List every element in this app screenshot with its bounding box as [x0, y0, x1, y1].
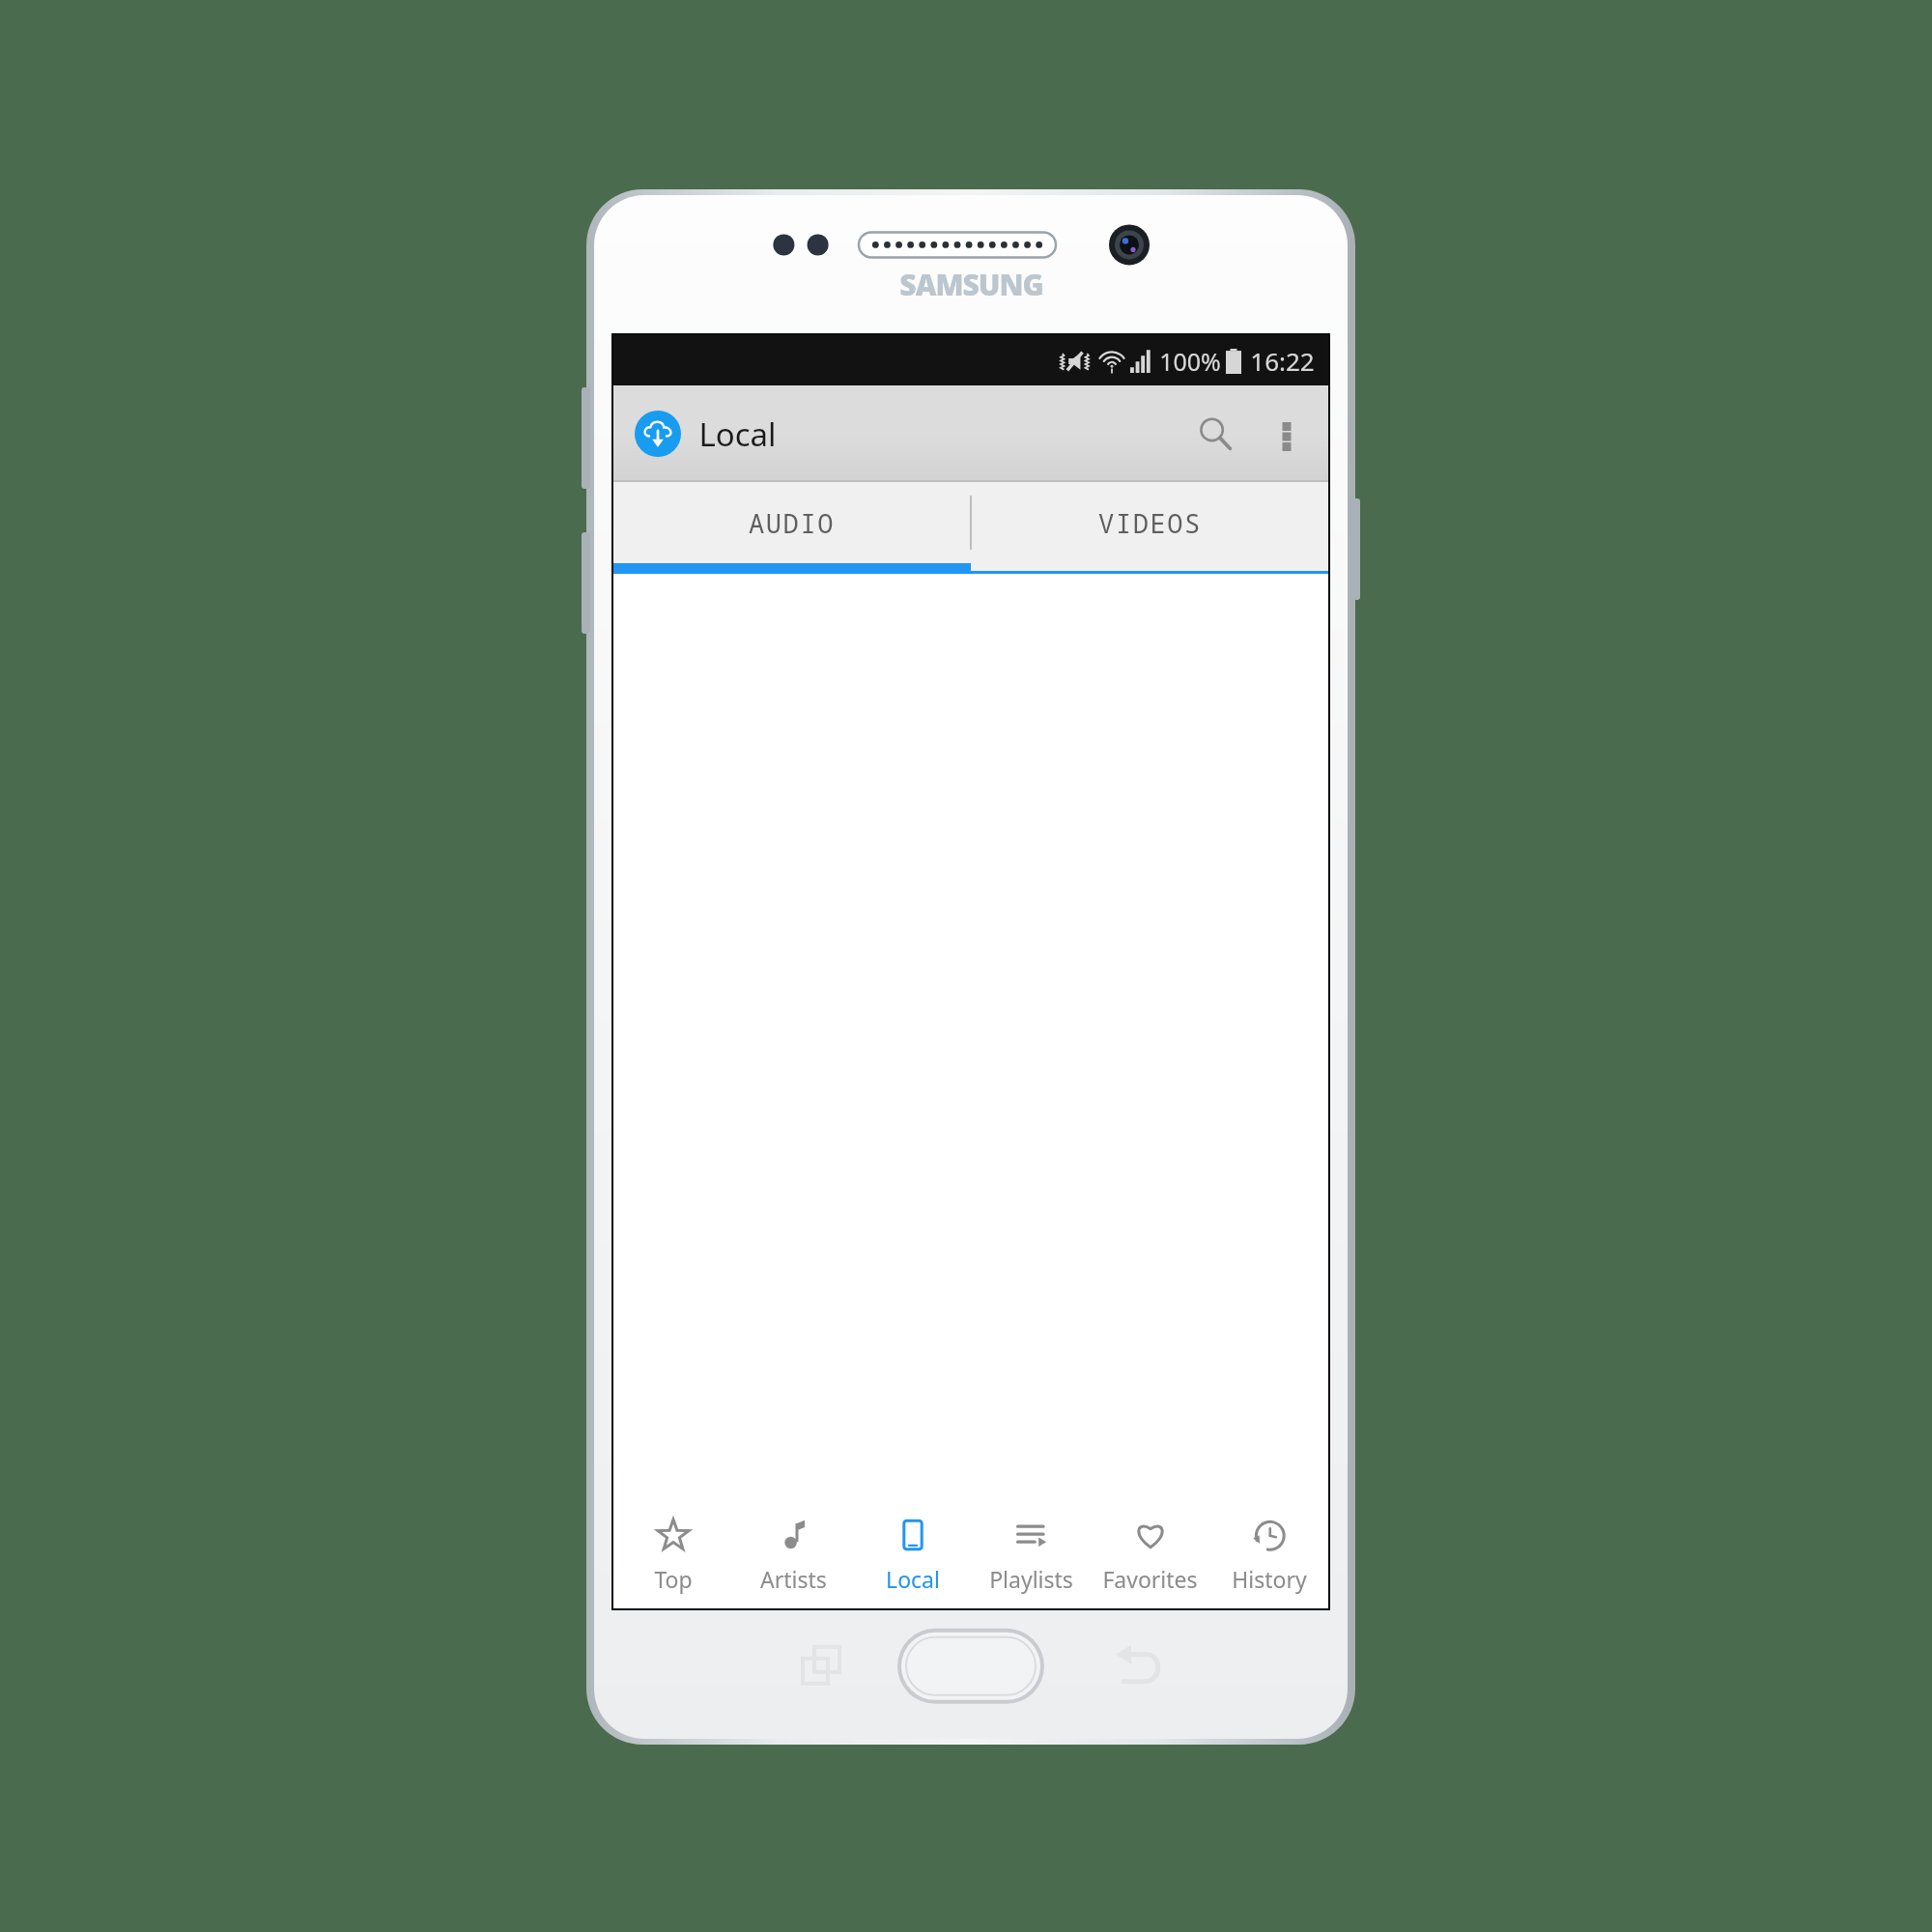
- button[interactable]: Search: [1179, 398, 1251, 469]
- staticText: Playlists: [989, 1564, 1073, 1594]
- button[interactable]: Local cloud download: [635, 411, 681, 457]
- button[interactable]: Favorites: [1091, 1494, 1209, 1608]
- staticText: Favorites: [1102, 1564, 1198, 1594]
- staticText: 100%: [1159, 345, 1221, 378]
- staticText: Local: [886, 1564, 940, 1594]
- staticText: Local: [698, 412, 777, 456]
- button[interactable]: Top: [613, 1494, 733, 1608]
- staticText: History: [1232, 1564, 1307, 1594]
- staticText: SAMSUNG: [899, 265, 1043, 304]
- button[interactable]: Artists: [733, 1494, 853, 1608]
- staticText: 16:22: [1250, 344, 1315, 378]
- staticText: AUDIO: [749, 505, 835, 541]
- button[interactable]: Playlists: [972, 1494, 1091, 1608]
- staticText: Artists: [760, 1564, 827, 1594]
- button[interactable]: History: [1209, 1494, 1328, 1608]
- button[interactable]: VIDEOS: [972, 482, 1328, 563]
- button[interactable]: More options: [1251, 398, 1322, 469]
- button[interactable]: Local: [853, 1494, 972, 1608]
- staticText: Top: [654, 1564, 693, 1594]
- button[interactable]: AUDIO: [613, 482, 970, 563]
- staticText: VIDEOS: [1098, 505, 1202, 541]
